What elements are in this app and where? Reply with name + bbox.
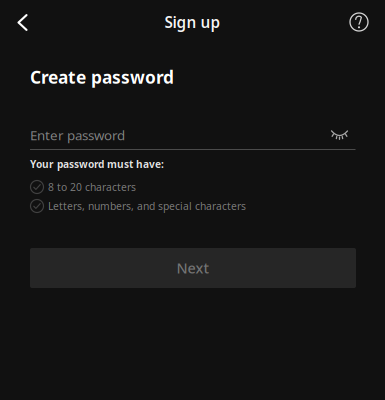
button[interactable]: Enter password xyxy=(30,126,310,144)
staticText: Next xyxy=(176,258,209,278)
staticText: Enter password xyxy=(30,126,125,144)
button[interactable]: Back xyxy=(0,0,43,44)
staticText: Create password xyxy=(30,65,174,89)
button[interactable]: Next xyxy=(30,248,356,288)
staticText: Letters, numbers, and special characters xyxy=(48,199,246,213)
staticText: 8 to 20 characters xyxy=(48,180,136,194)
staticText: Sign up xyxy=(164,12,220,32)
button[interactable]: Help xyxy=(337,0,385,44)
staticText: Your password must have: xyxy=(30,157,164,171)
button[interactable]: Show password xyxy=(330,126,355,144)
